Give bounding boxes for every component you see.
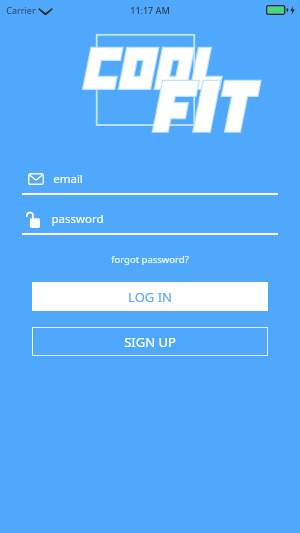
staticText: Carrier [6, 4, 36, 16]
staticText: 11:17 AM [130, 4, 170, 16]
staticText: password [51, 211, 104, 227]
staticText: SIGN UP [124, 333, 176, 351]
staticText: email [53, 171, 83, 187]
button[interactable]: password [22, 208, 278, 235]
button[interactable]: forgot password? [105, 251, 195, 268]
button[interactable]: SIGN UP [32, 327, 268, 356]
button[interactable]: LOG IN [32, 282, 268, 311]
staticText: LOG IN [128, 288, 172, 306]
staticText: forgot password? [111, 253, 189, 266]
button[interactable]: email [22, 168, 278, 195]
